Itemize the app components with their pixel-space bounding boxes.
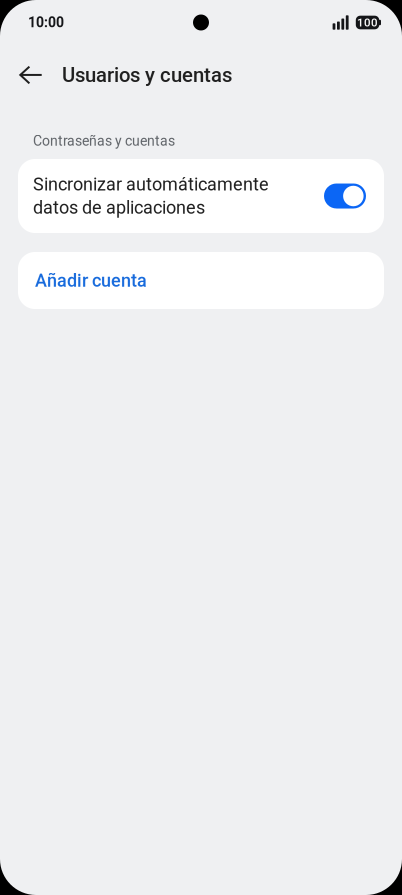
staticText: Contraseñas y cuentas [33,133,175,149]
staticText: 10:00 [28,14,64,31]
button[interactable]: Back [8,52,54,98]
staticText: Sincronizar automáticamente [33,174,269,195]
button[interactable]: Sincronizar automáticamente [18,159,384,233]
staticText: 100 [357,16,378,29]
staticText: datos de aplicaciones [33,197,205,218]
button[interactable]: Añadir cuenta [18,252,384,309]
staticText: Añadir cuenta [35,270,147,291]
staticText: Usuarios y cuentas [62,63,232,87]
